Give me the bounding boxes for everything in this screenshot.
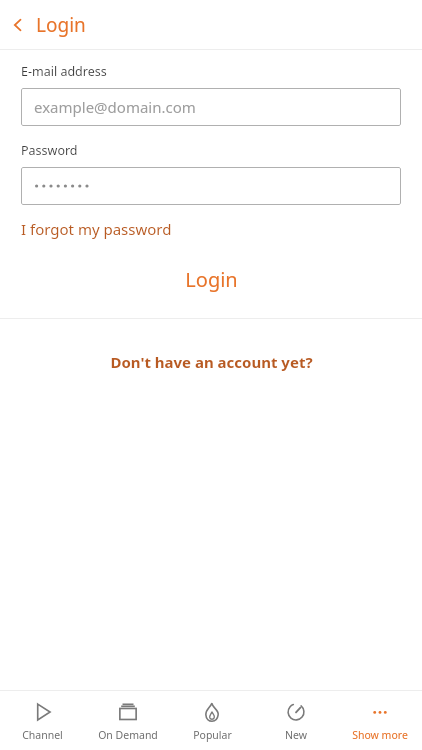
staticText: Login [185, 266, 238, 293]
button[interactable]: Don't have an account yet? [0, 348, 422, 376]
staticText: On Demand [98, 728, 158, 742]
button[interactable]: Channel [0, 695, 85, 747]
staticText: New [285, 728, 307, 742]
button[interactable]: New [254, 695, 338, 747]
staticText: example@domain.com [34, 97, 196, 117]
staticText: Password [21, 142, 78, 159]
staticText: E-mail address [21, 63, 107, 80]
button[interactable]: example@domain.com [21, 88, 401, 126]
staticText: Popular [193, 728, 232, 742]
staticText: Show more [352, 728, 408, 742]
other: Back [10, 17, 26, 33]
button[interactable] [21, 167, 401, 205]
button[interactable]: Back [0, 6, 98, 44]
staticText: I forgot my password [21, 219, 172, 239]
button[interactable]: On Demand [85, 695, 170, 747]
staticText: Login [36, 12, 86, 38]
button[interactable]: Show more [338, 695, 422, 747]
staticText: Channel [22, 728, 63, 742]
staticText: Don't have an account yet? [110, 352, 313, 372]
button[interactable]: Login [0, 258, 422, 301]
button[interactable]: I forgot my password [21, 216, 172, 242]
button[interactable]: Popular [170, 695, 254, 747]
